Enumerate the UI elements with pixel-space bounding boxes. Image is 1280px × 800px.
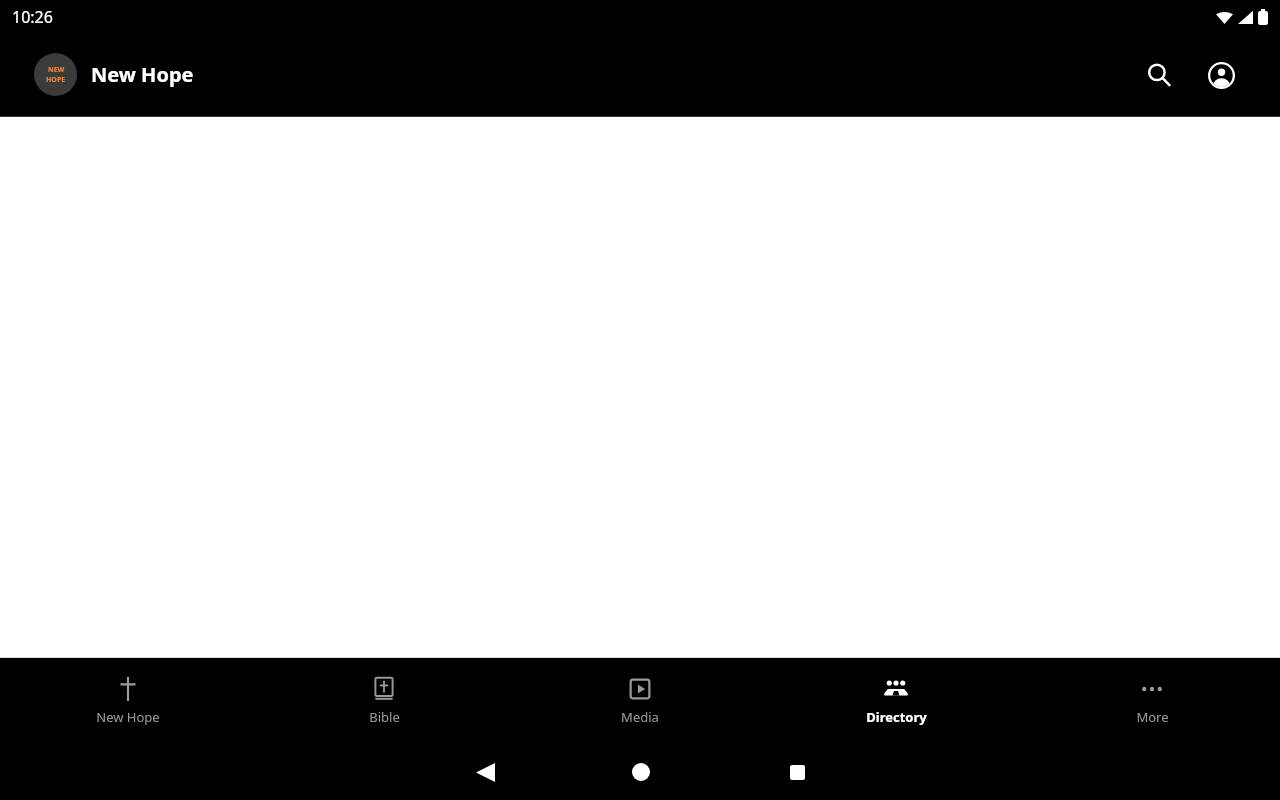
staticText: Directory xyxy=(866,708,927,726)
button[interactable]: More xyxy=(1024,658,1280,743)
button[interactable]: Recent apps xyxy=(774,749,820,795)
button[interactable]: Back xyxy=(462,749,508,795)
button[interactable]: Home xyxy=(618,749,664,795)
staticText: NEW xyxy=(48,65,65,75)
staticText: Bible xyxy=(369,708,400,726)
button[interactable]: NEW xyxy=(34,53,194,96)
button[interactable]: Account xyxy=(1200,54,1242,96)
staticText: New Hope xyxy=(96,708,160,726)
staticText: Media xyxy=(621,708,659,726)
button[interactable]: Bible xyxy=(256,658,512,743)
button[interactable]: Directory xyxy=(768,658,1024,743)
button[interactable]: New Hope xyxy=(0,658,256,743)
staticText: New Hope xyxy=(91,61,194,88)
button[interactable]: Search xyxy=(1138,54,1180,96)
button[interactable]: Media xyxy=(512,658,768,743)
staticText: More xyxy=(1136,708,1169,726)
staticText: 10:26 xyxy=(12,6,53,28)
staticText: HOPE xyxy=(46,75,66,85)
